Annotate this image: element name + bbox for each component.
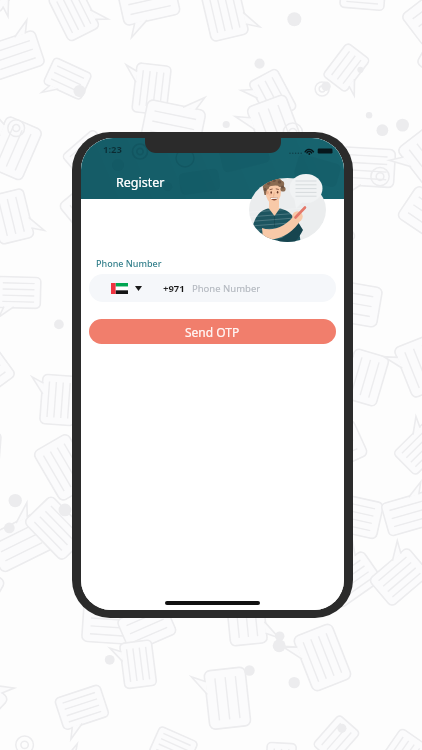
staticText: Phone Number: [192, 282, 261, 295]
staticText: Send OTP: [185, 324, 240, 340]
staticText: 1:23: [103, 143, 122, 156]
button[interactable]: Send OTP: [89, 319, 336, 344]
staticText: Phone Number: [96, 257, 162, 269]
staticText: +971: [163, 282, 185, 295]
staticText: Register: [116, 174, 165, 191]
button[interactable]: +971: [89, 274, 336, 302]
